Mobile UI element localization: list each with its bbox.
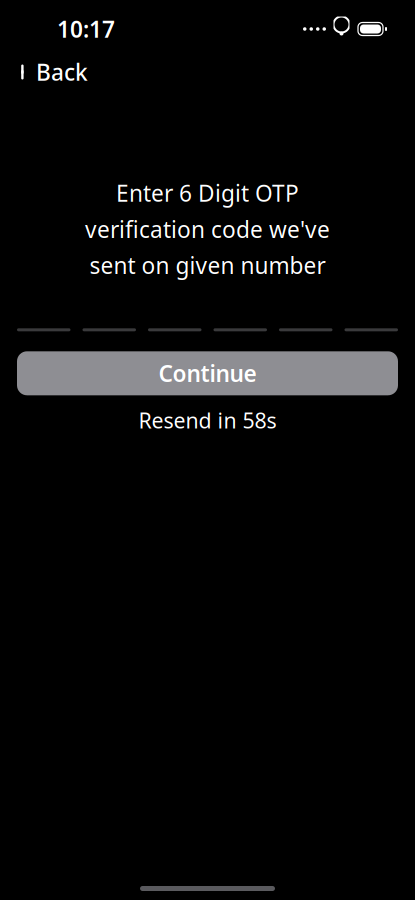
- staticText: Enter 6 Digit OTP: [116, 178, 299, 208]
- staticText: verification code we've: [85, 214, 330, 244]
- staticText: Resend in 58s: [138, 406, 276, 434]
- staticText: sent on given number: [89, 250, 325, 280]
- staticText: 10:17: [57, 14, 115, 44]
- button[interactable]: Resend in 58s: [126, 407, 288, 433]
- button[interactable]: Back: [0, 54, 100, 90]
- button[interactable]: Continue: [17, 351, 398, 395]
- staticText: Continue: [158, 358, 256, 388]
- staticText: Back: [36, 57, 88, 87]
